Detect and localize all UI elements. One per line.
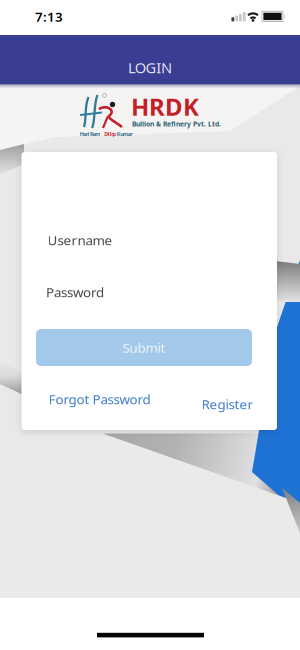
- staticText: Password: [46, 283, 104, 301]
- staticText: 7:13: [35, 8, 63, 25]
- button[interactable]: Forgot Password: [48, 390, 150, 408]
- staticText: Kumar: [117, 130, 132, 138]
- button[interactable]: Register: [201, 395, 253, 413]
- staticText: Username: [47, 231, 112, 249]
- button[interactable]: Password: [42, 277, 247, 307]
- staticText: Submit: [122, 339, 165, 356]
- button[interactable]: Submit: [36, 329, 252, 366]
- button[interactable]: Username: [42, 225, 247, 255]
- staticText: Register: [201, 395, 253, 413]
- staticText: LOGIN: [128, 58, 172, 77]
- staticText: Dilip: [104, 130, 116, 138]
- staticText: Hari Ram: [80, 130, 100, 138]
- staticText: Forgot Password: [48, 390, 150, 408]
- staticText: HRDK: [131, 91, 199, 122]
- staticText: Bullion & Refinery Pvt. Ltd.: [132, 120, 221, 128]
